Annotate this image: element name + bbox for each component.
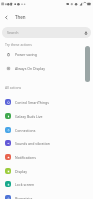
staticText: Always On Display	[15, 66, 45, 71]
button[interactable]: Control SmartThings	[0, 95, 93, 109]
button[interactable]: Power saving	[0, 47, 93, 61]
button[interactable]: Always On Display	[0, 61, 93, 75]
staticText: Display	[15, 169, 27, 174]
button[interactable]: Lock screen	[0, 177, 93, 191]
button[interactable]: Galaxy Buds Live	[0, 109, 93, 123]
button[interactable]: Biometrics	[0, 191, 93, 199]
staticText: Search	[7, 30, 19, 35]
button[interactable]: Sounds and vibration	[0, 136, 93, 150]
button[interactable]: Notifications	[0, 150, 93, 164]
staticText: Biometrics	[15, 196, 33, 199]
button[interactable]: Search	[2, 27, 91, 38]
staticText: Try these actions	[5, 42, 32, 47]
staticText: Galaxy Buds Live	[15, 114, 43, 119]
staticText: Connections	[15, 128, 36, 133]
staticText: All actions	[5, 85, 22, 90]
button[interactable]: Display	[0, 164, 93, 178]
button[interactable]: Back	[0, 11, 13, 24]
staticText: Lock screen	[15, 182, 35, 187]
staticText: Power saving	[15, 52, 37, 57]
staticText: Then	[15, 14, 26, 20]
button[interactable]: Connections	[0, 123, 93, 137]
staticText: Notifications	[15, 155, 36, 160]
staticText: Control SmartThings	[15, 100, 49, 105]
staticText: Sounds and vibration	[15, 141, 50, 146]
